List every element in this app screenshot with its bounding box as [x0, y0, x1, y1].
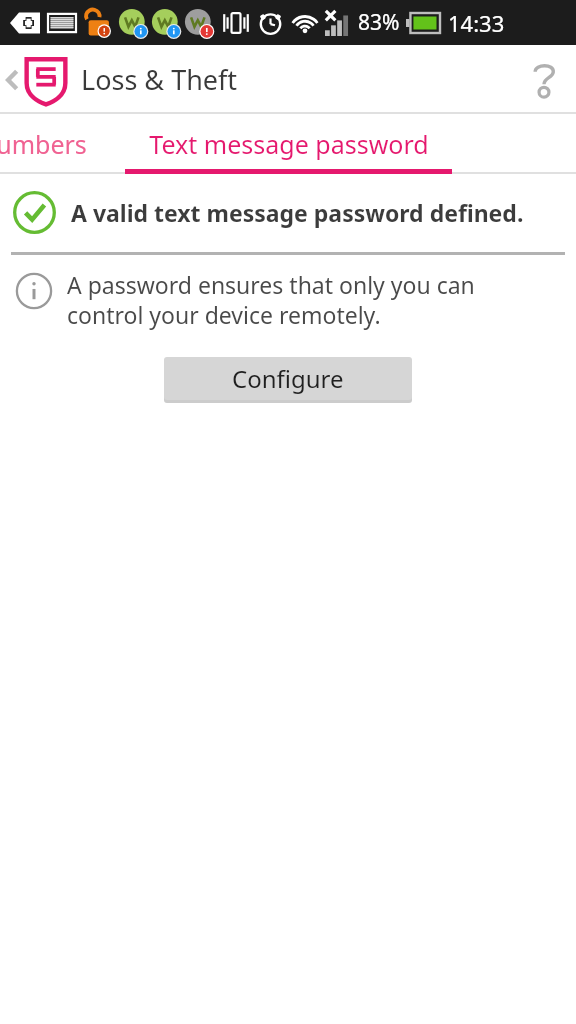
staticText: Numbers — [0, 127, 87, 161]
staticText: A valid text message password defined. — [71, 197, 524, 228]
button[interactable]: Help — [512, 45, 576, 114]
staticText: 83% — [358, 8, 400, 37]
staticText: Text message password — [149, 127, 429, 161]
staticText: Configure — [232, 362, 344, 395]
button[interactable]: Numbers — [0, 114, 92, 174]
staticText: Loss & Theft — [81, 61, 238, 98]
button[interactable]: A valid text message password defined. — [0, 186, 576, 238]
staticText: A password ensures that only you can con… — [67, 269, 546, 331]
button[interactable]: Configure — [164, 357, 412, 400]
staticText: 14:33 — [448, 8, 505, 38]
button[interactable]: Text message password — [125, 114, 452, 174]
button[interactable]: Navigate up — [0, 54, 72, 106]
